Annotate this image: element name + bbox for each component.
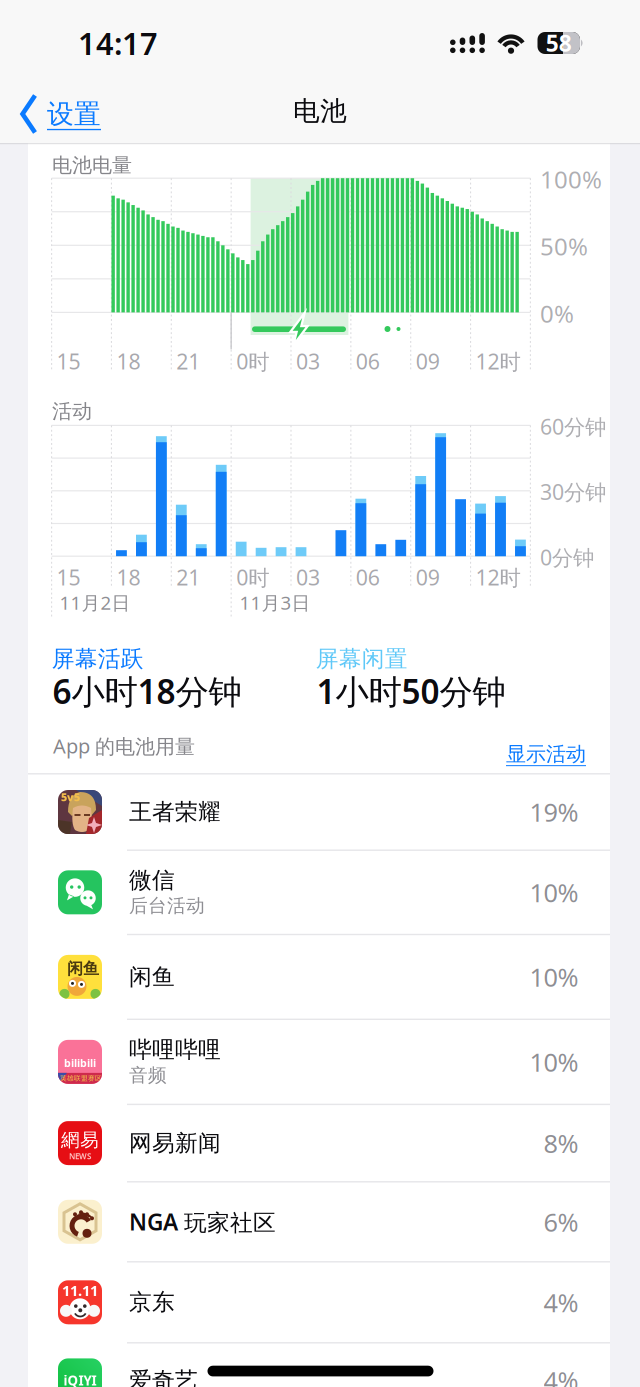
staticText: 微信 xyxy=(129,866,175,894)
button[interactable]: 王者荣耀 xyxy=(28,774,610,850)
staticText: 电池电量 xyxy=(52,153,132,178)
button[interactable]: 爱奇艺 xyxy=(28,1343,610,1387)
staticText: 09 xyxy=(416,347,440,375)
staticText: 6% xyxy=(543,1205,578,1239)
staticText: 网易新闻 xyxy=(129,1129,221,1157)
staticText: 0时 xyxy=(236,563,269,591)
staticText: 18 xyxy=(116,563,140,591)
staticText: 58 xyxy=(546,28,572,58)
staticText: 12时 xyxy=(476,563,521,591)
staticText: 屏幕活跃 xyxy=(52,645,144,673)
staticText: 爱奇艺 xyxy=(129,1366,198,1387)
button[interactable]: 京东 xyxy=(28,1262,610,1343)
staticText: 15 xyxy=(57,347,81,375)
staticText: 1小时50分钟 xyxy=(316,669,505,713)
staticText: 03 xyxy=(296,347,320,375)
staticText: NEWS xyxy=(69,1151,91,1161)
staticText: 03 xyxy=(296,563,320,591)
staticText: 30分钟 xyxy=(540,478,606,506)
staticText: 11月2日 xyxy=(59,590,130,615)
button[interactable]: 显示活动 xyxy=(486,741,586,767)
staticText: 100% xyxy=(540,163,602,195)
staticText: 10% xyxy=(529,1045,578,1079)
staticText: 闲鱼 xyxy=(67,959,99,979)
staticText: App 的电池用量 xyxy=(53,732,195,759)
staticText: 显示活动 xyxy=(506,742,586,766)
staticText: 哔哩哔哩 xyxy=(129,1036,221,1064)
staticText: 王者荣耀 xyxy=(129,798,221,826)
staticText: 后台活动 xyxy=(129,894,205,917)
staticText: 09 xyxy=(416,563,440,591)
staticText: 6小时18分钟 xyxy=(52,669,241,713)
staticText: 21 xyxy=(176,347,200,375)
staticText: 英雄联盟赛区 xyxy=(60,1074,102,1082)
staticText: 0% xyxy=(540,297,574,329)
staticText: 15 xyxy=(57,563,81,591)
staticText: iQIYI xyxy=(63,1371,96,1387)
staticText: 60分钟 xyxy=(540,412,606,440)
button[interactable]: 闲鱼 xyxy=(28,934,610,1019)
staticText: NGA 玩家社区 xyxy=(129,1207,276,1237)
staticText: 10% xyxy=(529,875,578,909)
staticText: 19% xyxy=(529,795,578,829)
staticText: 10% xyxy=(529,960,578,994)
staticText: 11.11 xyxy=(62,1281,98,1300)
staticText: 音频 xyxy=(129,1064,167,1087)
staticText: 活动 xyxy=(52,399,92,424)
staticText: 0时 xyxy=(236,347,269,375)
staticText: 4% xyxy=(543,1364,578,1387)
staticText: 12时 xyxy=(476,347,521,375)
staticText: 4% xyxy=(543,1285,578,1319)
staticText: 8% xyxy=(543,1126,578,1160)
staticText: 18 xyxy=(116,347,140,375)
staticText: 5v5 xyxy=(61,790,80,804)
staticText: 06 xyxy=(356,347,380,375)
staticText: 电池 xyxy=(293,95,347,127)
button[interactable]: 哔哩哔哩 xyxy=(28,1019,610,1104)
button[interactable]: 微信 xyxy=(28,850,610,934)
button[interactable]: Back to Settings xyxy=(21,92,131,136)
staticText: 0分钟 xyxy=(540,543,594,571)
staticText: 14:17 xyxy=(78,23,158,63)
button[interactable]: NGA 玩家社区 xyxy=(28,1182,610,1262)
staticText: 京东 xyxy=(129,1288,175,1316)
staticText: 網易 xyxy=(61,1129,99,1151)
staticText: 屏幕闲置 xyxy=(316,645,408,673)
button[interactable]: 网易新闻 xyxy=(28,1104,610,1182)
staticText: 50% xyxy=(540,230,588,262)
staticText: bilibili xyxy=(64,1056,96,1070)
staticText: 21 xyxy=(176,563,200,591)
staticText: 06 xyxy=(356,563,380,591)
staticText: 11月3日 xyxy=(240,590,311,615)
staticText: 闲鱼 xyxy=(129,963,175,991)
staticText: 设置 xyxy=(47,98,101,130)
